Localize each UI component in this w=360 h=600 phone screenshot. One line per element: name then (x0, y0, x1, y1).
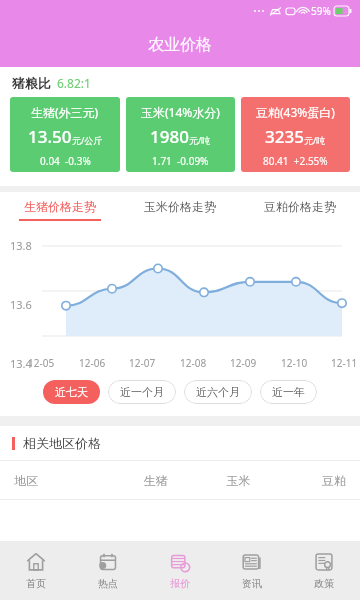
button[interactable]: 豆粕(43%蛋白) (241, 97, 350, 172)
button[interactable]: 生猪价格走势 (0, 192, 120, 228)
staticText: 13.50 (28, 125, 72, 148)
button[interactable]: 报价 (144, 541, 216, 600)
staticText: 59% (311, 4, 331, 18)
staticText: 13.6 (10, 297, 32, 312)
staticText: 相关地区价格 (23, 435, 101, 451)
staticText: 报价 (170, 577, 190, 590)
staticText: 生猪价格走势 (24, 199, 96, 214)
staticText: 玉米价格走势 (144, 199, 216, 214)
staticText: 3235 (265, 125, 304, 148)
staticText: 豆粕 (280, 473, 346, 488)
staticText: 资讯 (242, 577, 262, 590)
staticText: 元/吨 (304, 134, 326, 146)
button[interactable]: 玉米(14%水分) (126, 97, 235, 172)
staticText: 元/吨 (189, 134, 211, 146)
button[interactable]: 资讯 (216, 541, 288, 600)
staticText: 80.41 +2.55% (263, 154, 328, 168)
staticText: 玉米 (197, 473, 280, 488)
staticText: 农业价格 (148, 35, 212, 55)
button[interactable]: 热点 (72, 541, 144, 600)
staticText: 猪粮比 (12, 75, 51, 91)
staticText: 12-10 (281, 356, 308, 370)
staticText: 13.4 (10, 356, 32, 371)
button[interactable]: 近七天 (43, 380, 100, 404)
staticText: 首页 (26, 577, 46, 590)
staticText: 豆粕(43%蛋白) (256, 104, 335, 120)
staticText: 近一年 (272, 385, 305, 399)
button[interactable]: 豆粕价格走势 (240, 192, 360, 228)
button[interactable]: 近一个月 (108, 380, 176, 404)
staticText: 12-11 (331, 356, 358, 370)
staticText: 生猪(外三元) (31, 104, 99, 120)
staticText: 13.8 (10, 238, 32, 253)
staticText: 近七天 (55, 385, 88, 399)
button[interactable]: 玉米价格走势 (120, 192, 240, 228)
staticText: 12-05 (28, 356, 55, 370)
staticText: 12-09 (230, 356, 257, 370)
staticText: 地区 (14, 473, 114, 488)
button[interactable]: 首页 (0, 541, 72, 600)
staticText: 近一个月 (120, 385, 164, 399)
staticText: 近六个月 (196, 385, 240, 399)
staticText: 1980 (150, 125, 189, 148)
button[interactable]: 近一年 (260, 380, 317, 404)
staticText: 热点 (98, 577, 118, 590)
button[interactable]: 政策 (288, 541, 360, 600)
staticText: 6.82:1 (57, 75, 91, 91)
staticText: 生猪 (114, 473, 197, 488)
staticText: 1.71 -0.09% (152, 154, 209, 168)
staticText: 豆粕价格走势 (264, 199, 336, 214)
staticText: 元/公斤 (72, 134, 103, 146)
button[interactable]: 生猪(外三元) (10, 97, 120, 172)
staticText: 政策 (314, 577, 334, 590)
staticText: 0.04 -0.3% (40, 154, 91, 168)
staticText: 12-07 (129, 356, 156, 370)
staticText: 玉米(14%水分) (141, 104, 220, 120)
button[interactable]: 近六个月 (184, 380, 252, 404)
staticText: 12-06 (79, 356, 106, 370)
staticText: 12-08 (180, 356, 207, 370)
